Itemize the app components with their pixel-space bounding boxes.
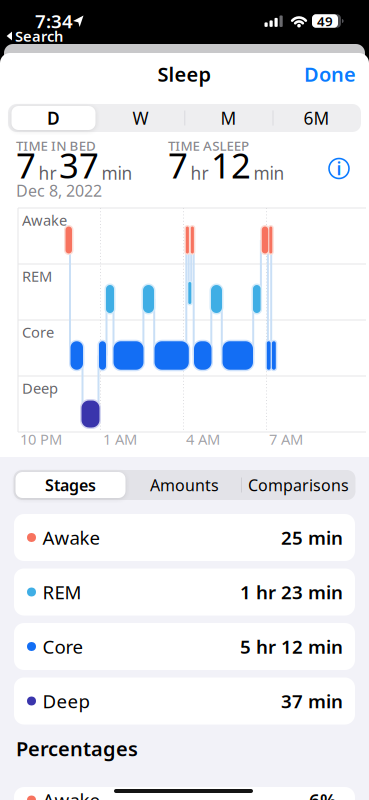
staticText: W	[132, 106, 148, 129]
button[interactable]: Back to Search	[0, 0, 369, 47]
button[interactable]: REM	[14, 568, 355, 615]
staticText: M	[220, 106, 236, 129]
staticText: REM	[42, 580, 81, 604]
button[interactable]: D	[11, 106, 95, 130]
button[interactable]: Done	[300, 59, 360, 89]
button[interactable]: Comparisons	[243, 471, 353, 499]
staticText: i	[336, 157, 341, 180]
staticText: min	[101, 161, 132, 184]
staticText: Awake	[42, 788, 100, 800]
staticText: 1 hr 23 min	[240, 580, 343, 604]
staticText: hr	[190, 161, 208, 184]
staticText: 12	[211, 142, 251, 188]
staticText: Deep	[22, 378, 58, 398]
staticText: 7 AM	[269, 429, 303, 449]
staticText: min	[253, 161, 284, 184]
staticText: Awake	[22, 210, 67, 230]
staticText: 7:34	[35, 9, 73, 33]
staticText: Comparisons	[248, 474, 349, 496]
staticText: 6%	[309, 788, 336, 800]
staticText: 5 hr 12 min	[240, 634, 343, 659]
staticText: REM	[22, 266, 52, 286]
staticText: hr	[38, 161, 56, 184]
staticText: Core	[22, 322, 54, 342]
staticText: Search	[15, 26, 63, 46]
button[interactable]: Awake	[14, 514, 355, 561]
staticText: 7	[16, 142, 36, 188]
staticText: Amounts	[150, 474, 219, 496]
staticText: Deep	[42, 689, 89, 713]
staticText: Done	[304, 61, 356, 87]
staticText: 37 min	[281, 689, 343, 713]
staticText: 4 AM	[186, 429, 220, 449]
button[interactable]: 6M	[276, 105, 356, 131]
staticText: Awake	[42, 525, 100, 550]
button[interactable]: Core	[14, 623, 355, 670]
staticText: 25 min	[281, 525, 343, 550]
staticText: 1 AM	[103, 429, 137, 449]
staticText: TIME ASLEEP	[168, 137, 249, 154]
button[interactable]: About Sleep	[326, 155, 352, 181]
button[interactable]: Amounts	[129, 471, 239, 499]
staticText: Sleep	[157, 61, 211, 87]
staticText: Stages	[45, 474, 96, 496]
staticText: 6M	[303, 106, 329, 129]
staticText: 37	[59, 142, 99, 188]
staticText: 49	[317, 12, 333, 30]
staticText: D	[47, 106, 60, 129]
staticText: 10 PM	[20, 429, 62, 449]
staticText: TIME IN BED	[16, 137, 96, 154]
staticText: Dec 8, 2022	[16, 180, 102, 201]
staticText: 7	[168, 142, 188, 188]
button[interactable]: M	[188, 105, 268, 131]
button[interactable]: W	[100, 105, 180, 131]
staticText: Core	[42, 634, 83, 659]
staticText: Percentages	[16, 735, 138, 762]
button[interactable]: Deep	[14, 677, 355, 724]
button[interactable]: Stages	[15, 472, 125, 498]
